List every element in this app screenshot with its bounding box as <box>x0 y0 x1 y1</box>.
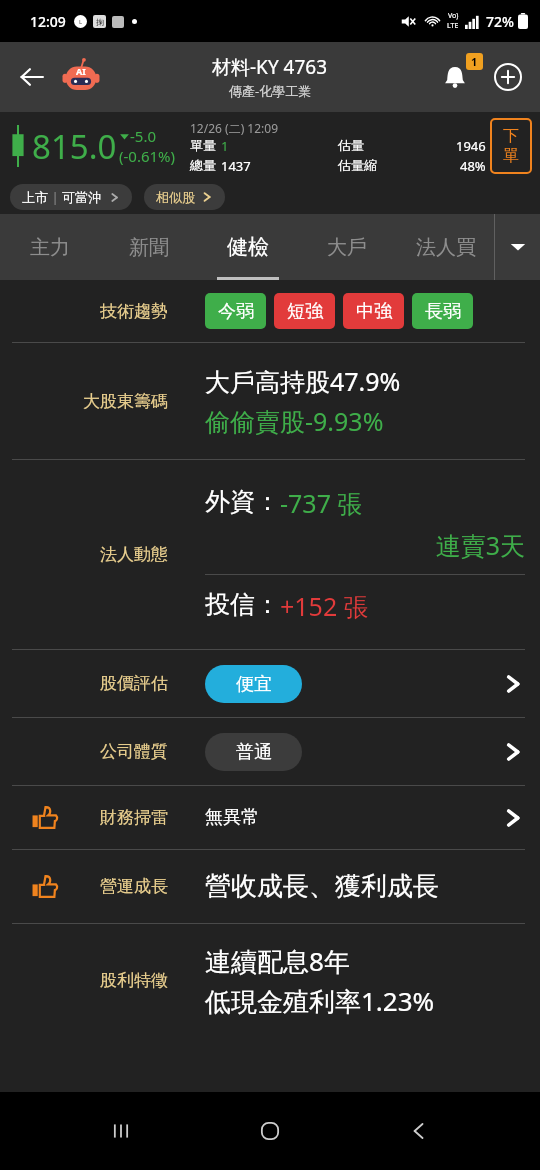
button[interactable]: 上市 <box>10 184 132 210</box>
button[interactable]: AI assistant <box>58 54 104 100</box>
staticText: 連續配息8年 <box>205 943 350 979</box>
button[interactable]: 大戶 <box>297 214 396 280</box>
button[interactable]: 新聞 <box>99 214 198 280</box>
staticText: -737 張 <box>280 486 363 520</box>
staticText: 主力 <box>30 235 70 260</box>
staticText: L <box>79 18 83 26</box>
button[interactable]: 下 <box>490 118 532 174</box>
button[interactable]: 營運成長 <box>0 850 540 923</box>
staticText: 總量 <box>190 157 216 173</box>
button[interactable]: Back <box>8 53 56 101</box>
button[interactable]: 大股東籌碼 <box>0 343 540 459</box>
staticText: 1 <box>221 137 229 155</box>
staticText: 72% <box>486 12 514 31</box>
staticText: 股利特徵 <box>100 970 168 991</box>
staticText: 投信： <box>205 589 280 620</box>
staticText: 12/26 (二) 12:09 <box>190 120 279 136</box>
button[interactable]: 中強 <box>343 293 404 329</box>
staticText: 股價評估 <box>100 673 168 694</box>
staticText: 普通 <box>236 741 272 764</box>
button[interactable]: 健檢 <box>198 214 297 280</box>
staticText: 技術趨勢 <box>100 301 168 322</box>
staticText: 新聞 <box>129 235 169 260</box>
staticText: +152 張 <box>280 589 369 623</box>
button[interactable]: 便宜 <box>205 665 302 703</box>
staticText: 單量 <box>190 137 216 153</box>
button[interactable]: 主力 <box>0 214 99 280</box>
staticText: 偷偷賣股-9.93% <box>205 404 384 438</box>
button[interactable]: Back <box>391 1103 447 1159</box>
button[interactable]: Recent apps <box>93 1103 149 1159</box>
staticText: 掬 <box>96 17 104 27</box>
button[interactable]: More tabs <box>495 214 540 280</box>
staticText: 公司體質 <box>100 741 168 762</box>
button[interactable]: 普通 <box>205 733 302 771</box>
staticText: 今弱 <box>218 300 254 323</box>
staticText: 低現金殖利率1.23% <box>205 983 435 1019</box>
staticText: 估量 <box>338 137 364 153</box>
staticText: 財務掃雷 <box>100 807 168 828</box>
staticText: 營收成長、獲利成長 <box>205 870 439 903</box>
staticText: 中強 <box>356 300 392 323</box>
staticText: 1437 <box>221 157 251 175</box>
staticText: 連賣3天 <box>205 528 525 562</box>
button[interactable]: 法人買 <box>396 214 495 280</box>
staticText: 法人買 <box>416 235 476 260</box>
button[interactable]: Add <box>484 53 532 101</box>
button[interactable]: 法人動態 <box>0 460 540 649</box>
button[interactable]: 技術趨勢 <box>0 280 540 342</box>
staticText: (-0.61%) <box>119 146 176 166</box>
staticText: 外資： <box>205 486 280 517</box>
staticText: 單 <box>503 146 519 166</box>
staticText: Vo) <box>448 11 459 21</box>
staticText: 大股東籌碼 <box>83 391 168 412</box>
staticText: | <box>48 188 62 206</box>
button[interactable]: 公司體質 <box>0 718 540 785</box>
staticText: 長弱 <box>425 300 461 323</box>
staticText: 估量縮 <box>338 157 377 173</box>
button[interactable]: 相似股 <box>144 184 225 210</box>
staticText: 1 <box>471 54 478 69</box>
staticText: 815.0 <box>32 124 117 169</box>
staticText: 相似股 <box>156 189 195 205</box>
staticText: 上市 <box>22 189 48 205</box>
staticText: 健檢 <box>227 234 269 260</box>
staticText: 營運成長 <box>100 876 168 897</box>
staticText: 下 <box>503 126 519 146</box>
staticText: 可當沖 <box>62 189 101 205</box>
staticText: 材料-KY 4763 <box>212 54 328 80</box>
button[interactable]: 今弱 <box>205 293 266 329</box>
button[interactable]: 股利特徵 <box>0 924 540 1037</box>
staticText: 法人動態 <box>100 544 168 565</box>
staticText: -5.0 <box>130 126 157 146</box>
button[interactable]: Notifications <box>432 54 478 100</box>
button[interactable]: 財務掃雷 <box>0 786 540 849</box>
staticText: AI <box>76 65 86 77</box>
staticText: 傳產-化學工業 <box>229 82 312 100</box>
button[interactable]: 股價評估 <box>0 650 540 717</box>
staticText: LTE <box>447 21 459 31</box>
button[interactable]: Home <box>242 1103 298 1159</box>
staticText: 48% <box>460 157 486 175</box>
staticText: 12:09 <box>30 12 66 31</box>
staticText: 無異常 <box>205 806 259 829</box>
button[interactable]: 長弱 <box>412 293 473 329</box>
staticText: 1946 <box>456 137 486 155</box>
staticText: 短強 <box>287 300 323 323</box>
staticText: 大戶 <box>327 235 367 260</box>
button[interactable]: 短強 <box>274 293 335 329</box>
staticText: 大戶高持股47.9% <box>205 364 401 398</box>
staticText: 便宜 <box>236 673 272 696</box>
